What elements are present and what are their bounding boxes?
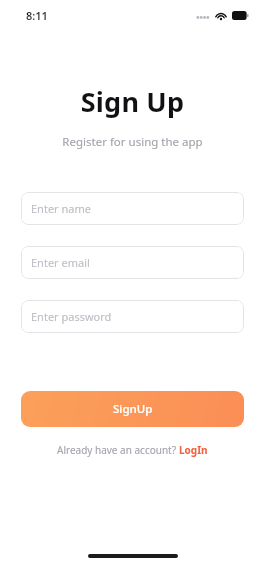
staticText: Already have an account? [57, 443, 179, 457]
staticText: Register for using the app [0, 134, 265, 150]
staticText: Sign Up [0, 83, 265, 120]
staticText: Enter name [31, 201, 91, 216]
staticText: 8:11 [26, 8, 48, 23]
staticText: Enter email [31, 255, 90, 270]
other: Home [88, 554, 178, 558]
button[interactable]: Enter name [21, 192, 244, 225]
staticText: Enter password [31, 309, 112, 324]
button[interactable]: Enter password [21, 300, 244, 333]
button[interactable]: LogIn [179, 443, 208, 457]
staticText: SignUp [113, 401, 153, 417]
button[interactable]: SignUp [21, 391, 244, 427]
button[interactable]: Enter email [21, 246, 244, 279]
staticText: LogIn [179, 443, 208, 457]
